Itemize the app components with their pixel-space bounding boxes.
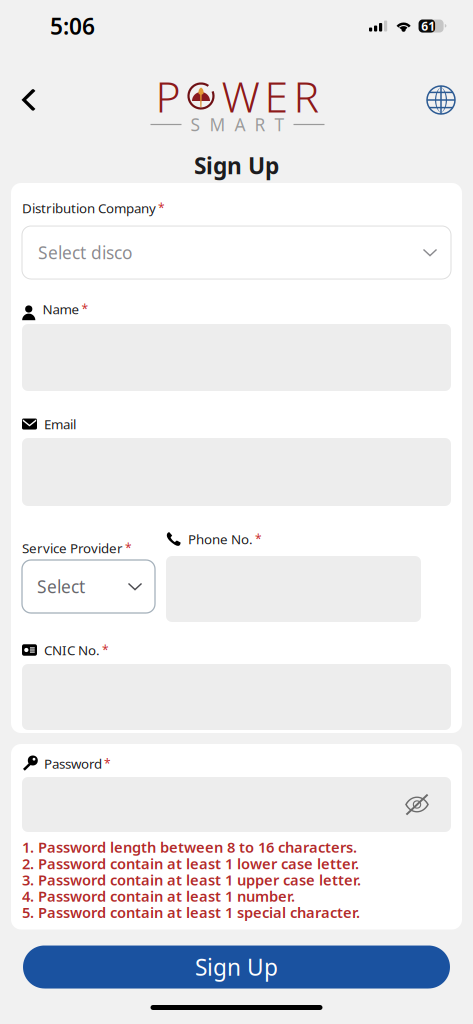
staticText: 5:06 bbox=[50, 11, 95, 41]
staticText: 1. Password length between 8 to 16 chara… bbox=[22, 837, 357, 857]
staticText: * bbox=[102, 642, 109, 658]
staticText: 4. Password contain at least 1 number. bbox=[22, 886, 295, 906]
staticText: 3. Password contain at least 1 upper cas… bbox=[22, 870, 361, 889]
staticText: 5. Password contain at least 1 special c… bbox=[22, 903, 360, 922]
staticText: Sign Up bbox=[194, 150, 279, 180]
button[interactable]: Back bbox=[20, 71, 64, 129]
button[interactable]: Show password bbox=[395, 781, 439, 827]
staticText: E bbox=[264, 68, 288, 124]
button[interactable]: Sign Up bbox=[23, 945, 450, 988]
staticText: A bbox=[234, 113, 245, 136]
staticText: Service Provider bbox=[22, 539, 123, 557]
staticText: M bbox=[209, 113, 225, 136]
staticText: Name bbox=[42, 300, 79, 318]
staticText: Select bbox=[37, 575, 85, 598]
button[interactable]: Select disco bbox=[22, 226, 451, 279]
staticText: CNIC No. bbox=[44, 641, 100, 659]
staticText: * bbox=[104, 755, 111, 771]
staticText: 2. Password contain at least 1 lower cas… bbox=[22, 854, 359, 873]
staticText: R bbox=[254, 113, 265, 136]
staticText: S bbox=[190, 113, 200, 136]
staticText: 61 bbox=[421, 18, 435, 34]
staticText: Email bbox=[44, 415, 76, 433]
staticText: Sign Up bbox=[195, 952, 278, 982]
staticText: W bbox=[221, 68, 259, 124]
staticText: * bbox=[125, 540, 132, 556]
button[interactable]: Change language bbox=[411, 71, 455, 129]
staticText: * bbox=[158, 200, 165, 216]
staticText: * bbox=[255, 531, 262, 547]
staticText: Select disco bbox=[38, 241, 132, 264]
staticText: Password bbox=[44, 755, 102, 772]
staticText: T bbox=[274, 113, 284, 136]
staticText: R bbox=[293, 68, 319, 124]
staticText: P bbox=[155, 68, 180, 124]
staticText: Phone No. bbox=[188, 530, 253, 548]
staticText: Distribution Company bbox=[22, 199, 156, 217]
staticText: * bbox=[81, 301, 88, 317]
button[interactable]: Select bbox=[22, 560, 155, 613]
